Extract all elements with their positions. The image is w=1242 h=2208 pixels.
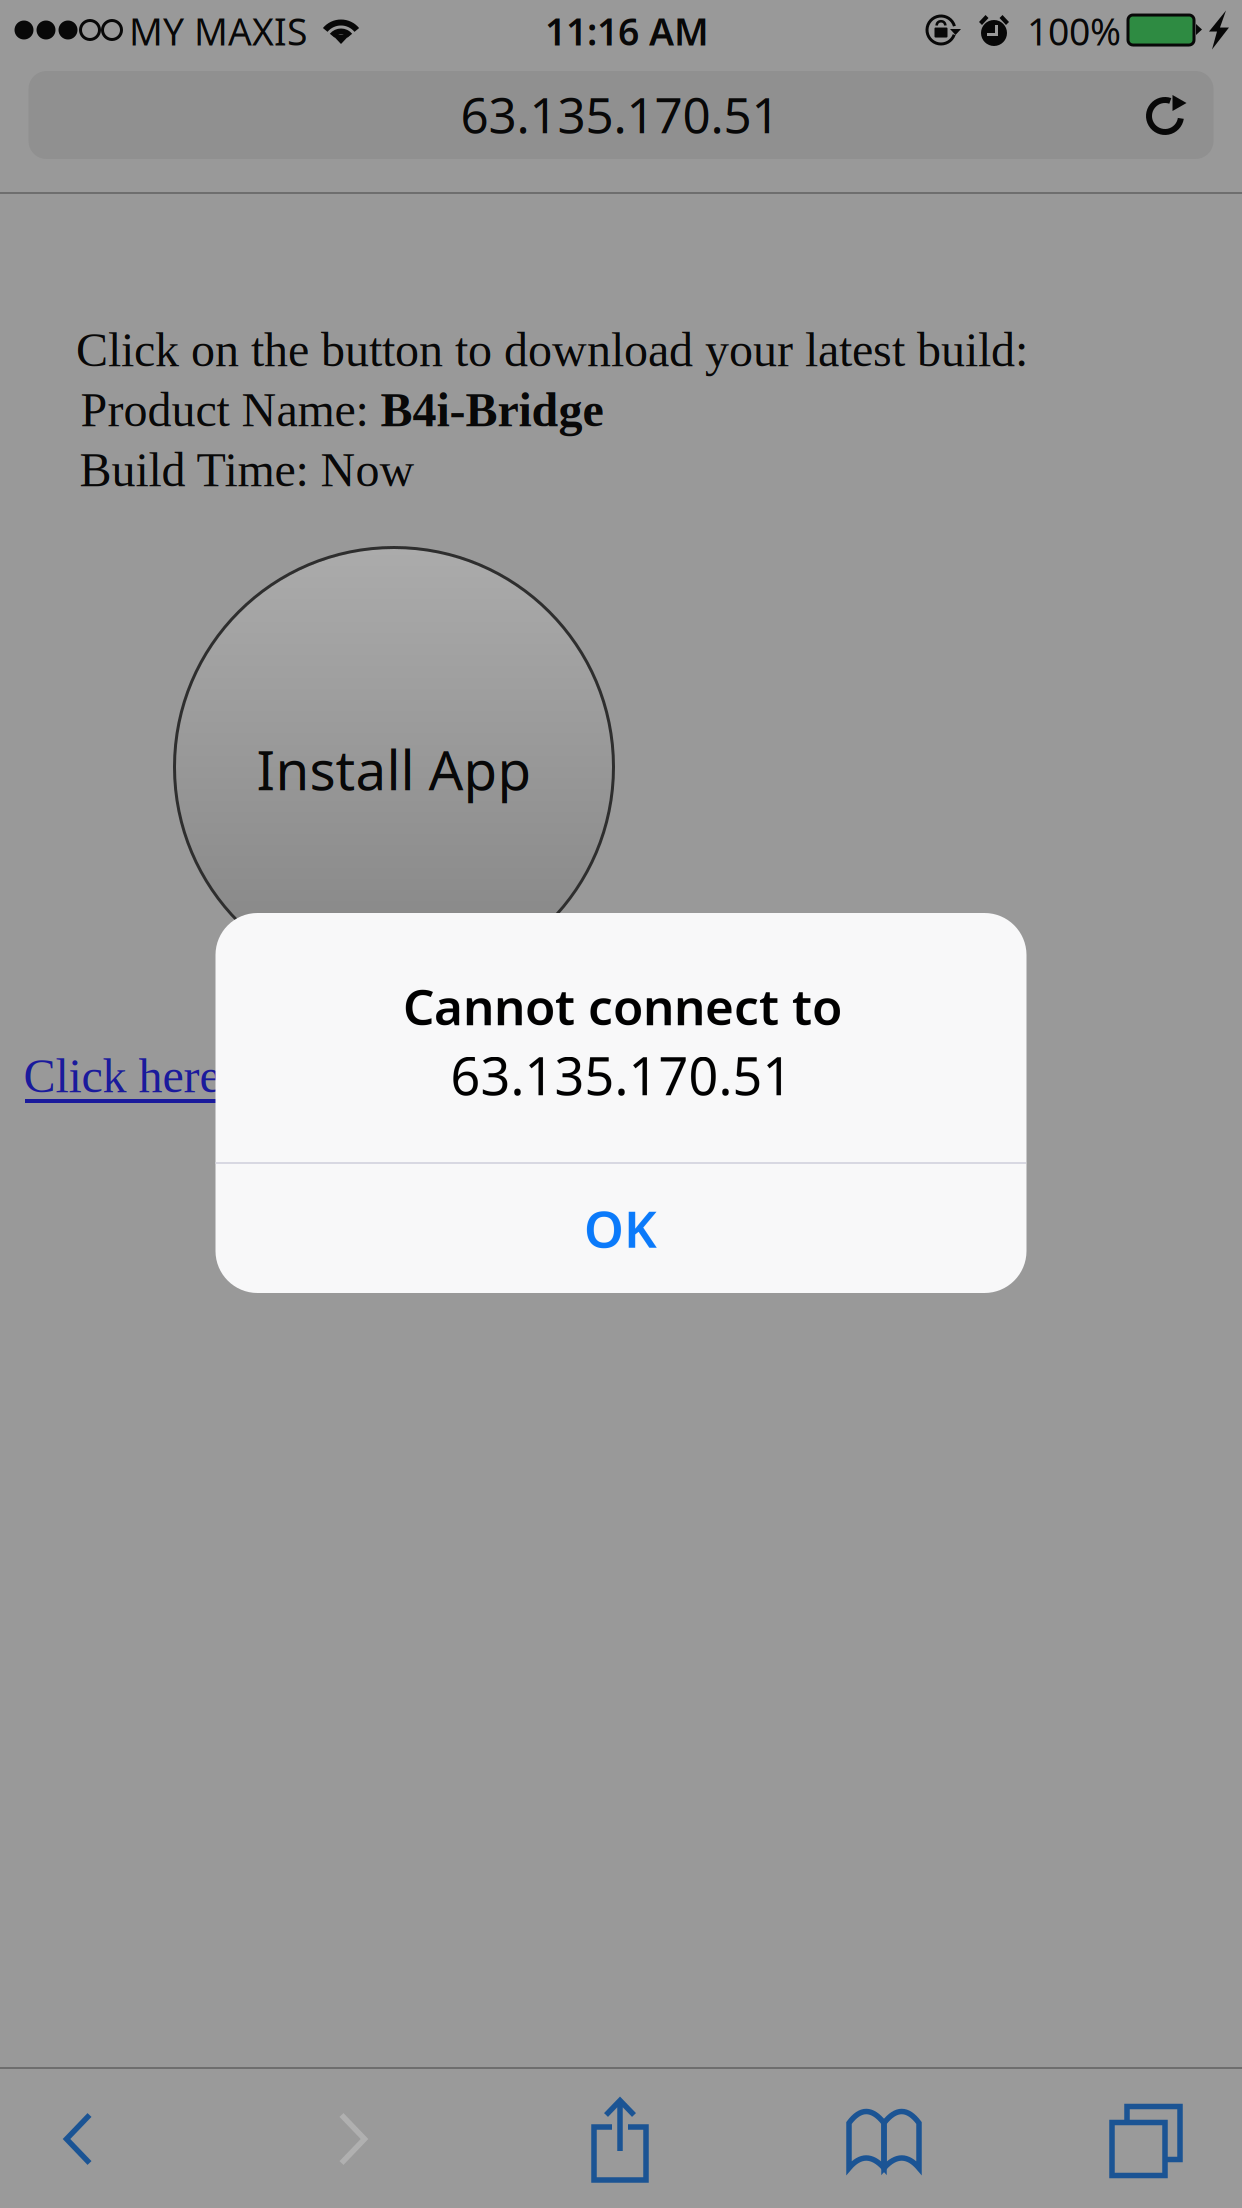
staticText: OK [584,1194,657,1262]
staticText: 63.135.170.51 [460,81,779,147]
button[interactable]: Install App [174,547,614,987]
button[interactable]: Tabs [1046,2071,1242,2208]
staticText: Click here [23,1049,220,1103]
staticText: Cannot connect to [403,973,842,1039]
staticText: Product Name: [80,383,380,437]
staticText: Click on the button to download your lat… [76,323,1028,377]
staticText: Build Time: Now [79,443,414,497]
staticText: MY MAXIS [129,6,307,56]
staticText: Install App [256,733,531,805]
staticText: 63.135.170.51 [450,1040,792,1110]
button[interactable]: OK [215,1164,1026,1292]
button[interactable]: Bookmarks [784,2071,984,2208]
button[interactable]: Click here [22,1047,222,1111]
button[interactable]: Back [0,2069,178,2208]
staticText: B4i-Bridge [380,383,603,437]
staticText: 100% [1027,6,1121,56]
button[interactable]: Share [520,2070,720,2208]
button[interactable]: Reload [1105,66,1225,166]
staticText: 11:16 AM [545,6,709,56]
